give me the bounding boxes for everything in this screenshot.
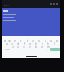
button[interactable]: x (15, 45, 21, 48)
button[interactable]: z (10, 45, 15, 48)
staticText: . (47, 48, 48, 51)
staticText: s (11, 42, 13, 45)
staticText: q (4, 39, 6, 42)
staticText: t (27, 39, 28, 42)
staticText: c (23, 45, 25, 48)
button[interactable]: u (36, 39, 42, 42)
button[interactable]: p (54, 39, 60, 42)
button[interactable]: d (15, 42, 21, 45)
button[interactable]: e (12, 39, 18, 42)
button[interactable]: . (44, 48, 50, 51)
button[interactable]: k (45, 42, 51, 45)
button[interactable]: h (33, 42, 39, 45)
button[interactable]: s (9, 42, 15, 45)
staticText: ?123 (5, 48, 10, 51)
button[interactable]: c (21, 45, 27, 48)
button[interactable]: q (2, 39, 7, 42)
staticText: p (56, 39, 58, 42)
staticText: r (20, 39, 22, 42)
button[interactable]: r (18, 39, 24, 42)
staticText: k (47, 42, 49, 45)
staticText: v (29, 45, 31, 48)
button[interactable]: o (48, 39, 54, 42)
staticText: a (6, 42, 8, 45)
staticText: o (50, 39, 52, 42)
staticText: d (17, 42, 19, 45)
button[interactable]: j (39, 42, 45, 45)
staticText: b (35, 45, 37, 48)
staticText: y (32, 39, 34, 42)
staticText: x (17, 45, 19, 48)
staticText: n (41, 45, 43, 48)
button[interactable]: ?123 (2, 48, 12, 51)
button[interactable]: l (51, 42, 57, 45)
staticText: f (24, 42, 25, 45)
button[interactable]: f (21, 42, 27, 45)
staticText: w (8, 39, 11, 42)
button[interactable]: w (7, 39, 12, 42)
staticText: m (47, 45, 50, 48)
button[interactable]: a (4, 42, 9, 45)
staticText: u (38, 39, 40, 42)
button[interactable]: t (24, 39, 30, 42)
staticText: h (35, 42, 37, 45)
staticText: e (14, 39, 16, 42)
button[interactable]: m (45, 45, 51, 48)
staticText: z (12, 45, 14, 48)
button[interactable]: b (33, 45, 39, 48)
staticText: 9:41 (4, 3, 9, 6)
button[interactable]: g (27, 42, 33, 45)
button[interactable]: i (42, 39, 48, 42)
staticText: i (45, 39, 46, 42)
staticText: j (42, 42, 43, 45)
button[interactable]: y (30, 39, 36, 42)
button[interactable]: Send (50, 48, 60, 51)
button[interactable]: v (27, 45, 33, 48)
staticText: g (29, 42, 31, 45)
button[interactable]: n (39, 45, 45, 48)
